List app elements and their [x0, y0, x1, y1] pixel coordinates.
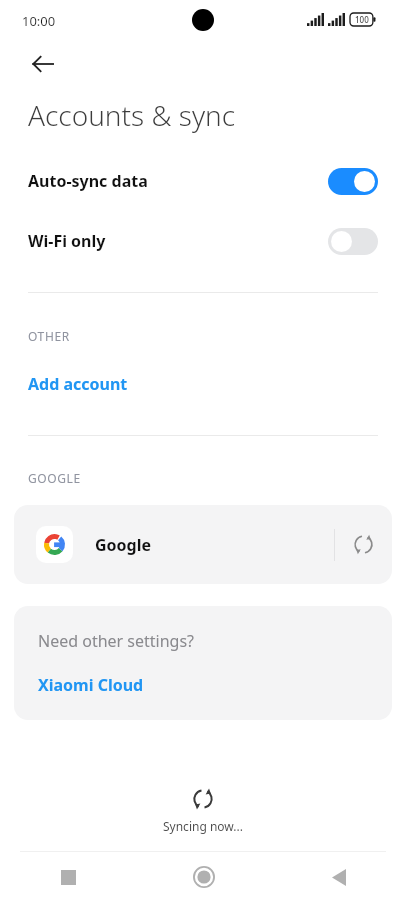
staticText: Add account: [28, 373, 128, 395]
staticText: 10:00: [22, 12, 56, 30]
staticText: Auto-sync data: [28, 170, 148, 192]
staticText: GOOGLE: [28, 470, 81, 486]
staticText: Need other settings?: [38, 630, 195, 652]
staticText: Google: [95, 534, 152, 556]
button[interactable]: On: [328, 168, 378, 195]
button[interactable]: Auto-sync data: [0, 158, 406, 204]
button[interactable]: Xiaomi Cloud: [14, 668, 392, 702]
button[interactable]: Recents: [0, 852, 136, 902]
button[interactable]: Google: [14, 505, 392, 584]
staticText: Wi-Fi only: [28, 230, 106, 252]
button[interactable]: Home: [136, 852, 271, 902]
button[interactable]: Back: [271, 852, 406, 902]
staticText: OTHER: [28, 328, 70, 344]
button[interactable]: Off: [328, 228, 378, 255]
button[interactable]: Add account: [0, 363, 406, 405]
staticText: Syncing now...: [163, 818, 243, 834]
button[interactable]: Wi-Fi only: [0, 218, 406, 264]
staticText: Accounts & sync: [28, 96, 236, 134]
staticText: 100: [355, 14, 369, 25]
button[interactable]: Back: [20, 41, 66, 87]
staticText: Xiaomi Cloud: [38, 674, 144, 696]
other: Syncing: [335, 505, 392, 584]
